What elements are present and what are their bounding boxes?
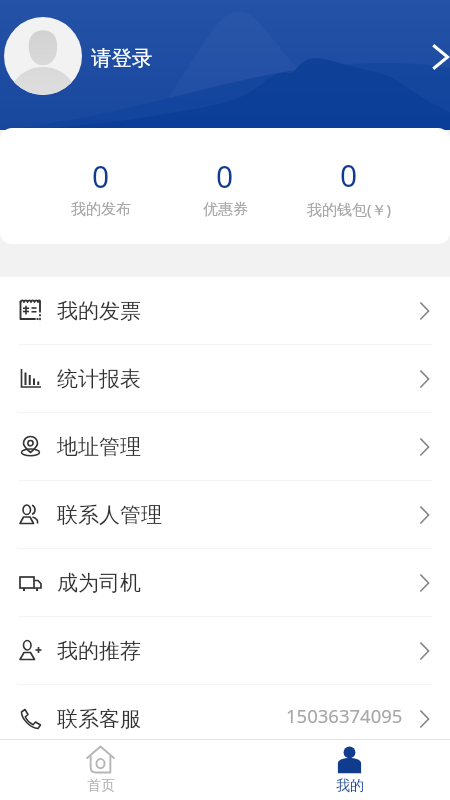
button[interactable]: 联系客服 [0,685,450,753]
button[interactable]: Login [424,40,450,74]
staticText: 15036374095 [286,703,403,728]
button[interactable]: 联系人管理 [0,481,450,549]
staticText: 我的发票 [57,298,141,324]
staticText: 请登录 [91,45,153,71]
button[interactable]: 首页 [41,740,160,800]
button[interactable]: 0 [163,128,287,244]
staticText: 统计报表 [57,366,141,392]
staticText: 0 [216,156,234,197]
staticText: 我的钱包(￥) [307,199,392,219]
button[interactable]: 地址管理 [0,413,450,481]
staticText: 我的推荐 [57,638,141,664]
button[interactable]: 我的 [290,740,409,800]
staticText: 联系客服 [57,706,141,732]
staticText: 首页 [87,777,115,795]
staticText: 0 [340,155,358,196]
button[interactable]: 统计报表 [0,345,450,413]
staticText: 联系人管理 [57,502,162,528]
button[interactable]: 0 [287,128,411,244]
staticText: 我的发布 [71,200,131,219]
staticText: 成为司机 [57,570,141,596]
staticText: 0 [92,156,110,197]
staticText: 我的 [336,777,364,795]
button[interactable]: 我的发票 [0,277,450,345]
staticText: 优惠券 [203,200,248,219]
button[interactable]: 0 [39,128,163,244]
button[interactable]: 我的推荐 [0,617,450,685]
button[interactable]: 成为司机 [0,549,450,617]
staticText: 地址管理 [57,434,141,460]
